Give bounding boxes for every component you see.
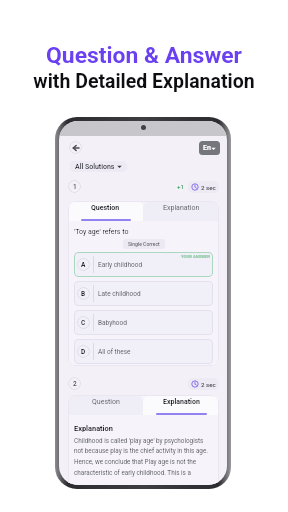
- button[interactable]: Explanation: [143, 395, 219, 415]
- staticText: Early childhood: [98, 261, 143, 269]
- staticText: 1: [73, 183, 77, 191]
- staticText: YOUR ANSWER: [181, 254, 210, 259]
- staticText: 2 sec: [201, 381, 216, 388]
- staticText: Babyhood: [98, 319, 127, 327]
- staticText: Explanation: [163, 398, 200, 406]
- button[interactable]: Question: [68, 201, 143, 221]
- staticText: A: [81, 261, 86, 269]
- button[interactable]: Question: [68, 395, 143, 415]
- staticText: Explanation: [163, 204, 200, 212]
- staticText: Single Correct: [128, 241, 160, 247]
- button[interactable]: Explanation: [143, 201, 219, 221]
- button[interactable]: B: [74, 281, 213, 306]
- staticText: with Detailed Explanation: [33, 70, 255, 93]
- button[interactable]: C: [74, 310, 213, 335]
- staticText: Explanation: [74, 424, 113, 433]
- staticText: All Solutions: [75, 163, 115, 171]
- button[interactable]: A: [74, 252, 213, 277]
- staticText: Childhood is called 'play age' by psycho…: [74, 437, 213, 477]
- staticText: 'Toy age' refers to: [74, 228, 129, 236]
- staticText: Question: [91, 204, 120, 212]
- staticText: Question & Answer: [46, 42, 242, 69]
- button[interactable]: En: [199, 141, 220, 155]
- button[interactable]: D: [74, 339, 213, 364]
- staticText: En: [203, 144, 211, 152]
- staticText: C: [81, 319, 86, 327]
- staticText: +1: [177, 183, 184, 190]
- staticText: Question: [92, 398, 120, 406]
- button[interactable]: All Solutions: [70, 161, 127, 172]
- staticText: Late childhood: [98, 290, 141, 298]
- staticText: 2: [73, 380, 77, 388]
- staticText: B: [81, 290, 86, 298]
- staticText: D: [81, 348, 86, 356]
- staticText: All of these: [98, 348, 131, 356]
- staticText: 2 sec: [201, 184, 216, 191]
- button[interactable]: Back: [69, 141, 82, 154]
